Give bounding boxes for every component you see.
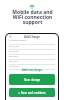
staticText: Mobile data and WiFi connection support [12, 9, 53, 26]
staticText: Start date [9, 45, 20, 48]
staticText: Charging station [9, 39, 27, 42]
staticText: End time [9, 60, 19, 63]
button[interactable]: Back [9, 35, 12, 38]
button[interactable]: Save charge [9, 74, 55, 85]
staticText: 12/02/2022 [9, 58, 22, 60]
staticText: Save charge [24, 78, 41, 82]
staticText: Start time [9, 50, 20, 53]
staticText: Add new charge [22, 68, 42, 72]
staticText: Total kWh [9, 65, 20, 68]
staticText: 09:00 [9, 53, 16, 55]
staticText: 17:00 [9, 63, 16, 65]
staticText: 12/02/2022 [9, 48, 22, 50]
staticText: 32.5 [9, 68, 14, 70]
staticText: Station 1 [9, 42, 19, 45]
button[interactable]: Save and continue [9, 88, 55, 97]
staticText: Add Charge [24, 35, 40, 39]
button[interactable]: Add new charge [9, 68, 55, 72]
staticText: Save and continue [21, 91, 46, 95]
staticText: End date [9, 55, 19, 58]
